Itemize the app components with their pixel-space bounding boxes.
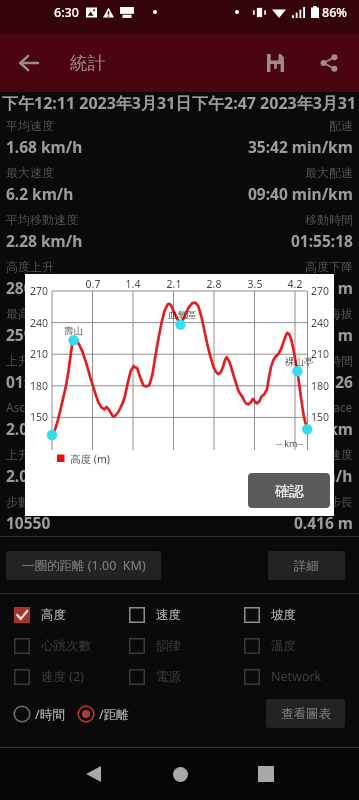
staticText: 2.02 km/h — [6, 418, 83, 439]
staticText: 平均移動速度 — [6, 212, 78, 227]
button[interactable]: /時間 — [13, 705, 65, 723]
staticText: 下午12:11 2023年3月31日 — [2, 92, 192, 113]
staticText: 坡度 — [271, 607, 296, 623]
staticText: 下降時間 — [305, 353, 353, 368]
staticText: 0.7 — [81, 277, 105, 291]
staticText: 平均速度 — [6, 118, 54, 133]
staticText: 270 — [25, 284, 48, 298]
button[interactable]: Recents — [242, 750, 290, 798]
staticText: 1.68 km/h — [6, 136, 83, 157]
staticText: 2.28 km/h — [6, 230, 83, 251]
staticText: 查看圖表 — [281, 706, 331, 722]
staticText: 確認 — [275, 482, 304, 500]
staticText: 速度 — [156, 607, 181, 623]
staticText: /時間 — [35, 706, 65, 723]
staticText: 下降平均速度 — [281, 447, 353, 462]
staticText: 上升時間 — [6, 353, 54, 368]
staticText: 210 — [311, 347, 330, 361]
button[interactable]: 詳細 — [268, 551, 345, 580]
staticText: 3.5 — [243, 277, 267, 291]
staticText: 2.02 km/h — [6, 465, 83, 486]
staticText: 1.4 — [121, 277, 145, 291]
staticText: 電源 — [156, 669, 181, 685]
button[interactable]: Save — [251, 39, 299, 87]
button[interactable]: 坡度 — [230, 599, 345, 630]
staticText: 移動時間 — [305, 212, 353, 227]
button[interactable]: 電源 — [115, 661, 230, 692]
staticText: 180 — [25, 379, 48, 393]
staticText: 配速 — [329, 118, 353, 133]
button[interactable]: 韻律 — [115, 630, 230, 661]
staticText: 2.13 km/h — [276, 465, 353, 486]
staticText: 10550 — [6, 512, 51, 533]
staticText: 最高海拔 — [6, 306, 54, 321]
staticText: 01:55:18 — [291, 230, 353, 251]
staticText: 4.2 — [283, 277, 307, 291]
staticText: Descent Pace — [277, 399, 353, 415]
staticText: 00:50:26 — [291, 371, 353, 392]
staticText: /距離 — [99, 706, 129, 723]
button[interactable]: 高度 — [0, 599, 115, 630]
staticText: 09:40 min/km — [248, 183, 353, 204]
button[interactable]: 確認 — [248, 473, 330, 508]
staticText: 270 m — [307, 277, 353, 298]
staticText: 2.1 — [162, 277, 186, 291]
staticText: 血氧區 — [168, 309, 197, 321]
staticText: 最低海拔 — [305, 306, 353, 321]
staticText: 韻律 — [156, 638, 181, 654]
button[interactable]: 速度 — [115, 599, 230, 630]
button[interactable]: Home — [156, 750, 204, 798]
button[interactable]: 一圈的距離 (1.00 KM) — [6, 551, 161, 580]
staticText: 詳細 — [294, 558, 319, 574]
button[interactable]: Back — [69, 750, 117, 798]
staticText: -- km-- — [276, 437, 304, 449]
button[interactable]: 速度 (2) — [0, 661, 115, 692]
staticText: 140 m — [307, 324, 353, 345]
staticText: 240 — [25, 316, 48, 330]
staticText: 6:30 — [54, 4, 79, 21]
staticText: 240 — [311, 316, 330, 330]
staticText: 上升平均速度 — [6, 447, 78, 462]
button[interactable]: Network — [230, 661, 345, 692]
staticText: 壽山 — [64, 325, 83, 337]
staticText: 6.2 km/h — [6, 183, 74, 204]
staticText: 最大速度 — [6, 165, 54, 180]
staticText: 下午2:47 2023年3月31日 — [192, 92, 357, 113]
staticText: 01:02:11 — [6, 371, 68, 392]
staticText: 裸山亭 — [285, 356, 314, 368]
staticText: 高度 — [41, 607, 66, 623]
staticText: Network — [271, 668, 322, 685]
staticText: 2.8 — [202, 277, 226, 291]
button[interactable]: 心跳次數 — [0, 630, 115, 661]
staticText: 259 m — [6, 324, 52, 345]
staticText: 2.50 min/km — [257, 418, 353, 439]
button[interactable]: Back — [4, 39, 52, 87]
staticText: 一圈的距離 (1.00 KM) — [22, 557, 146, 574]
staticText: 步長 — [329, 494, 353, 509]
staticText: 280 m — [6, 277, 52, 298]
staticText: 最大配速 — [305, 165, 353, 180]
staticText: 150 — [311, 410, 330, 424]
staticText: 0.416 m — [294, 512, 353, 533]
staticText: 86% — [322, 4, 347, 21]
button[interactable]: 查看圖表 — [266, 699, 345, 728]
staticText: 步數 — [6, 494, 30, 509]
staticText: Ascent Speed — [6, 399, 82, 415]
staticText: 35:42 min/km — [248, 136, 353, 157]
staticText: 150 — [25, 410, 48, 424]
button[interactable]: /距離 — [77, 705, 129, 723]
staticText: 溫度 — [271, 638, 296, 654]
staticText: 心跳次數 — [41, 638, 91, 654]
staticText: 統計 — [70, 52, 105, 74]
staticText: 高度下降 — [305, 259, 353, 274]
staticText: 高度上升 — [6, 259, 54, 274]
staticText: 210 — [25, 347, 48, 361]
staticText: 270 — [311, 284, 330, 298]
button[interactable]: Share — [305, 39, 353, 87]
staticText: 高度 (m) — [70, 452, 110, 466]
staticText: 180 — [311, 379, 330, 393]
staticText: 速度 (2) — [41, 668, 84, 685]
button[interactable]: 溫度 — [230, 630, 345, 661]
